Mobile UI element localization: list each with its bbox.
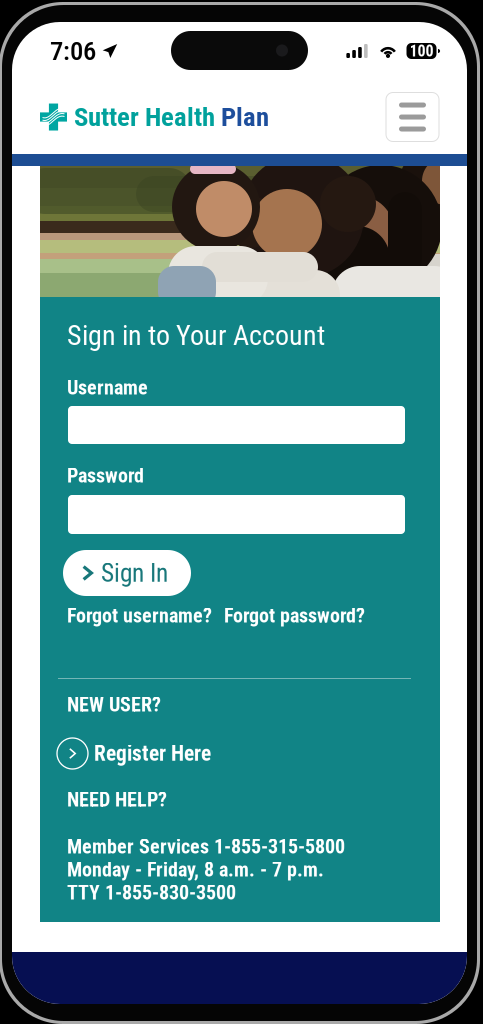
staticText: TTY 1-855-830-3500 <box>67 881 236 904</box>
staticText: Plan <box>221 101 269 133</box>
staticText: Monday - Friday, 8 a.m. - 7 p.m. <box>67 858 324 881</box>
button[interactable]: Forgot username? <box>67 604 212 627</box>
button[interactable]: Forgot password? <box>224 604 365 627</box>
staticText: Forgot username? <box>67 604 212 627</box>
staticText: Sign in to Your Account <box>67 319 325 352</box>
staticText: NEW USER? <box>67 693 161 716</box>
staticText: NEED HELP? <box>67 788 167 811</box>
button[interactable]: Menu <box>386 92 439 141</box>
button[interactable]: Register Here <box>57 738 211 769</box>
staticText: 7:06 <box>50 35 96 67</box>
staticText: Register Here <box>94 741 211 766</box>
staticText: Username <box>67 376 148 399</box>
staticText: Forgot password? <box>224 604 365 627</box>
staticText: 100 <box>409 42 433 60</box>
button[interactable]: Sign In <box>63 550 191 596</box>
staticText: Sign In <box>101 558 168 588</box>
staticText: Member Services 1-855-315-5800 <box>67 835 345 858</box>
staticText: Password <box>67 464 144 487</box>
staticText: Sutter Health <box>74 101 215 133</box>
